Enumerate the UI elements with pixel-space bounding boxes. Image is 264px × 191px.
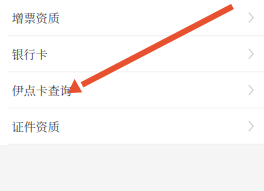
button[interactable]: 增票资质 xyxy=(0,0,264,36)
staticText: 伊点卡查询 xyxy=(12,81,72,99)
staticText: 增票资质 xyxy=(12,9,60,26)
button[interactable]: 证件资质 xyxy=(0,109,264,145)
staticText: 证件资质 xyxy=(12,118,60,135)
button[interactable]: 银行卡 xyxy=(0,36,264,72)
button[interactable]: 伊点卡查询 xyxy=(0,72,264,109)
staticText: 银行卡 xyxy=(12,45,48,62)
